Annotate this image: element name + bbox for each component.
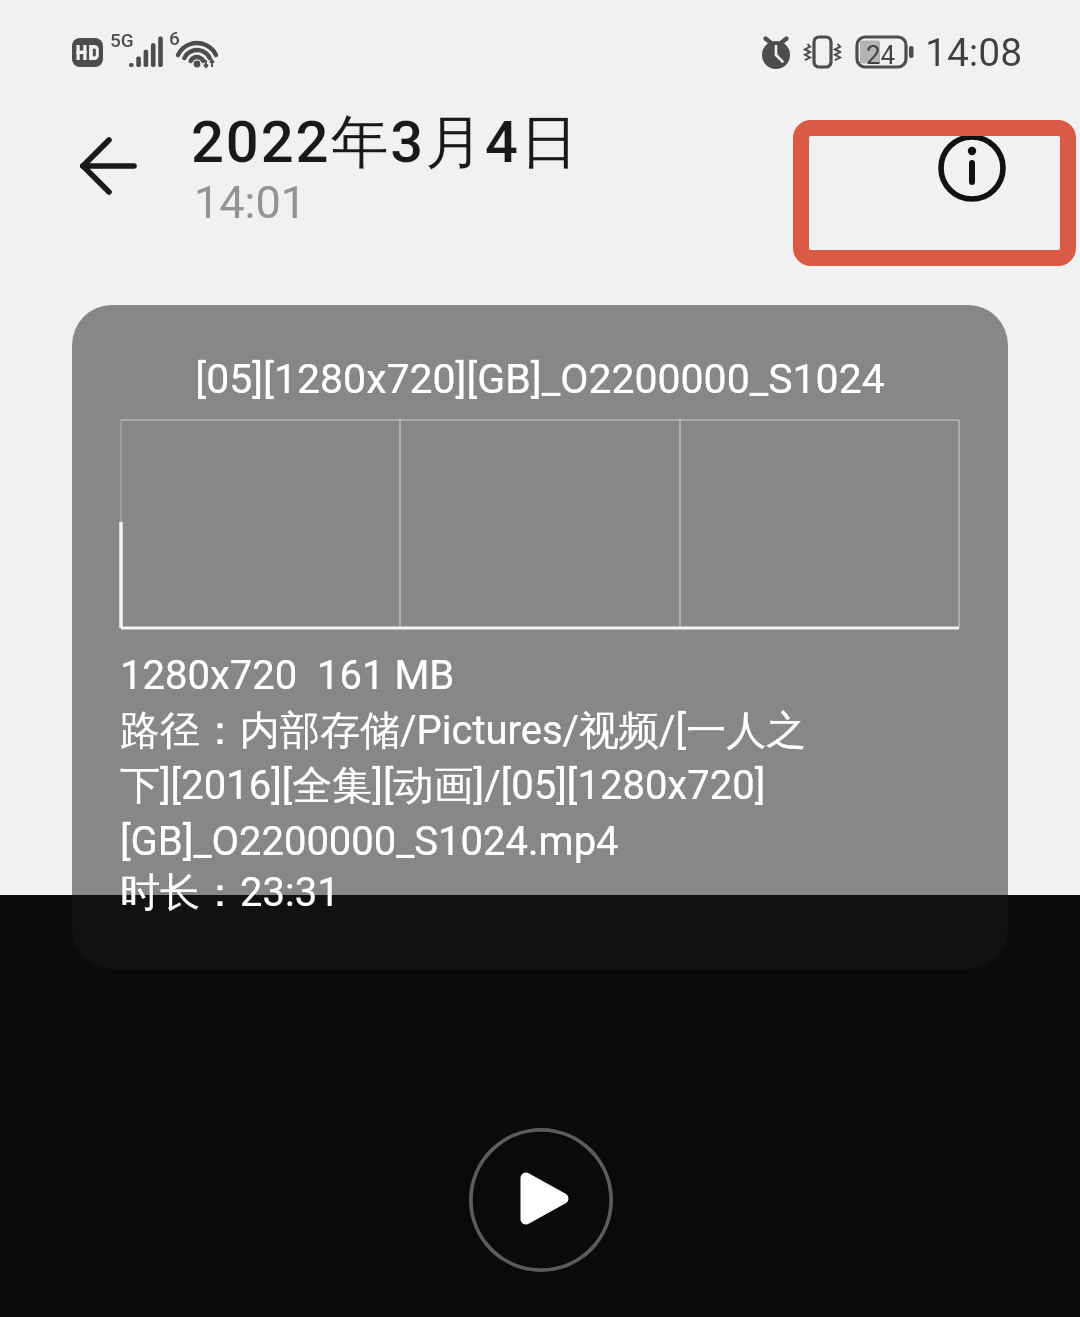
staticText: 2022年3月4日 [191,106,580,179]
staticText: 1280x720 161 MB [120,652,455,699]
staticText: 14:08 [925,30,1023,76]
button[interactable]: [05][1280x720][GB]_O2200000_S1024 [72,305,1008,969]
staticText: 时长：23:31 [120,867,340,917]
staticText: 6 [169,27,180,49]
button[interactable]: Video details [917,113,1027,223]
button[interactable]: Back [26,116,136,226]
staticText: 14:01 [194,176,307,229]
staticText: 5G [110,29,134,51]
staticText: [05][1280x720][GB]_O2200000_S1024 [72,355,1008,403]
button[interactable]: Play [469,1128,613,1272]
staticText: 24 [866,40,896,70]
staticText: 路径：内部存储/Pictures/视频/[一人之下][2016][全集][动画]… [120,705,826,865]
